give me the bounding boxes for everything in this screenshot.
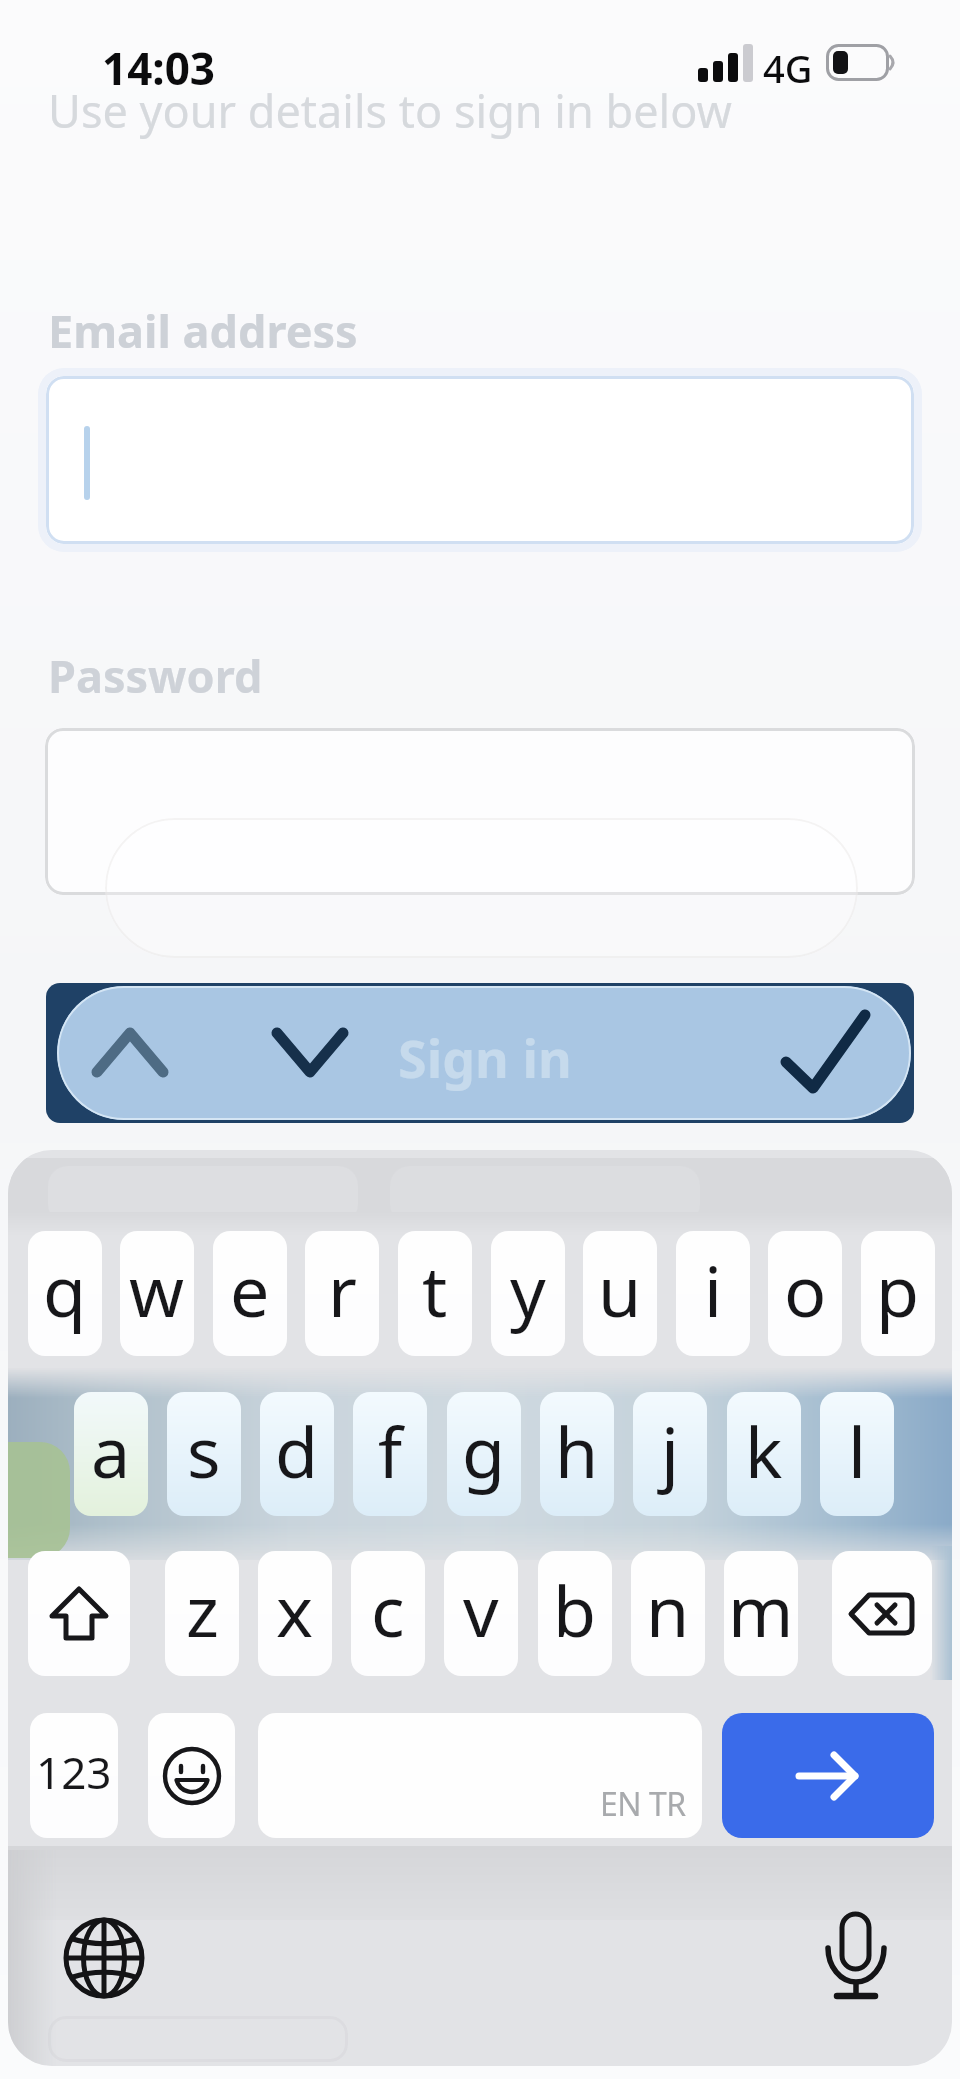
button[interactable]: r — [305, 1231, 379, 1356]
button[interactable] — [64, 1918, 144, 1998]
button[interactable]: q — [28, 1231, 102, 1356]
button[interactable]: b — [538, 1551, 612, 1676]
button[interactable]: v — [444, 1551, 518, 1676]
staticText: q — [43, 1242, 87, 1337]
button[interactable]: n — [631, 1551, 705, 1676]
button[interactable]: o — [768, 1231, 842, 1356]
button[interactable]: s — [167, 1392, 241, 1516]
button[interactable]: a — [74, 1392, 148, 1516]
button[interactable]: z — [165, 1551, 239, 1676]
button[interactable] — [92, 1024, 168, 1080]
staticText: z — [186, 1562, 219, 1657]
staticText: g — [462, 1403, 506, 1498]
staticText: d — [275, 1403, 319, 1498]
staticText: m — [728, 1562, 794, 1657]
button[interactable]: l — [820, 1392, 894, 1516]
button[interactable]: h — [540, 1392, 614, 1516]
button[interactable]: i — [676, 1231, 750, 1356]
staticText: 123 — [36, 1742, 112, 1802]
staticText: x — [276, 1562, 314, 1657]
staticText: s — [187, 1403, 221, 1498]
button[interactable] — [148, 1713, 235, 1838]
button[interactable] — [272, 1028, 348, 1080]
staticText: Use your details to sign in below — [48, 80, 732, 141]
button[interactable]: y — [491, 1231, 565, 1356]
button[interactable] — [722, 1713, 934, 1838]
staticText: e — [230, 1242, 270, 1337]
button[interactable]: c — [351, 1551, 425, 1676]
staticText: v — [463, 1562, 499, 1657]
staticText: b — [553, 1562, 597, 1657]
button[interactable]: m — [724, 1551, 798, 1676]
button[interactable]: w — [120, 1231, 194, 1356]
staticText: Sign in — [398, 1022, 572, 1093]
staticText: u — [598, 1242, 642, 1337]
staticText: i — [704, 1242, 723, 1337]
button[interactable]: x — [258, 1551, 332, 1676]
staticText: 14:03 — [102, 38, 216, 98]
button[interactable]: 123 — [30, 1713, 118, 1838]
button[interactable] — [57, 986, 911, 1120]
staticText: k — [745, 1403, 783, 1498]
button[interactable]: t — [398, 1231, 472, 1356]
button[interactable] — [832, 1551, 932, 1676]
staticText: n — [646, 1562, 690, 1657]
staticText: a — [91, 1403, 131, 1498]
staticText: o — [784, 1242, 827, 1337]
staticText: f — [378, 1403, 403, 1498]
button[interactable]: u — [583, 1231, 657, 1356]
button[interactable]: k — [727, 1392, 801, 1516]
staticText: 4G — [763, 42, 813, 94]
staticText: t — [422, 1242, 448, 1337]
staticText: p — [876, 1242, 920, 1337]
button[interactable]: p — [861, 1231, 935, 1356]
staticText: w — [129, 1242, 185, 1337]
button[interactable] — [780, 1008, 872, 1094]
staticText: l — [848, 1403, 867, 1498]
button[interactable] — [45, 728, 915, 895]
button[interactable] — [28, 1551, 130, 1676]
button[interactable] — [819, 1910, 893, 2002]
staticText: h — [555, 1403, 599, 1498]
staticText: r — [328, 1242, 357, 1337]
staticText: EN TR — [600, 1782, 686, 1826]
button[interactable]: j — [633, 1392, 707, 1516]
button[interactable]: d — [260, 1392, 334, 1516]
button[interactable]: g — [447, 1392, 521, 1516]
button[interactable]: e — [213, 1231, 287, 1356]
button[interactable] — [46, 376, 914, 544]
button[interactable]: f — [353, 1392, 427, 1516]
staticText: Password — [48, 645, 263, 706]
staticText: j — [661, 1403, 680, 1498]
staticText: c — [371, 1562, 405, 1657]
staticText: y — [510, 1242, 546, 1337]
staticText: Email address — [48, 300, 358, 361]
button[interactable]: EN TR — [258, 1713, 702, 1838]
